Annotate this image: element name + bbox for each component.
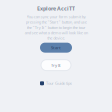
button[interactable]: Try It [41, 60, 71, 71]
staticText: Explore AcciTT [37, 5, 75, 12]
button[interactable]: Tour Guide tips [40, 81, 72, 86]
staticText: Start [51, 45, 61, 50]
staticText: You can sync your form submit by pressin… [24, 14, 87, 41]
button[interactable]: Start [40, 43, 72, 53]
staticText: Try It [51, 62, 61, 68]
staticText: Tour Guide tips [46, 81, 72, 86]
